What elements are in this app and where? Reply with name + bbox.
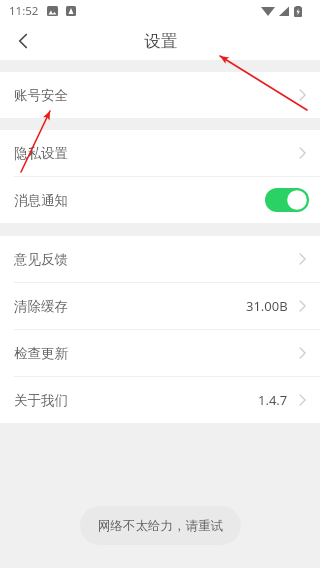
- staticText: 意见反馈: [14, 251, 68, 268]
- button[interactable]: Back: [0, 22, 44, 60]
- staticText: 关于我们: [14, 392, 68, 409]
- button[interactable]: 隐私设置: [0, 130, 320, 176]
- staticText: 检查更新: [14, 345, 68, 362]
- staticText: 账号安全: [14, 87, 68, 104]
- button[interactable]: 关于我们: [0, 377, 320, 423]
- staticText: 设置: [144, 31, 177, 52]
- staticText: 清除缓存: [14, 298, 68, 315]
- staticText: 隐私设置: [14, 145, 68, 162]
- staticText: 1.4.7: [258, 391, 288, 409]
- button[interactable]: 账号安全: [0, 72, 320, 118]
- staticText: 11:52: [9, 3, 39, 19]
- staticText: 消息通知: [14, 192, 68, 209]
- button[interactable]: 清除缓存: [0, 283, 320, 329]
- button[interactable]: 消息通知: [0, 177, 320, 223]
- staticText: 网络不太给力，请重试: [98, 518, 223, 534]
- button[interactable]: 消息通知 switch: [265, 188, 309, 212]
- staticText: 31.00B: [246, 297, 288, 315]
- button[interactable]: 检查更新: [0, 330, 320, 376]
- button[interactable]: 意见反馈: [0, 236, 320, 282]
